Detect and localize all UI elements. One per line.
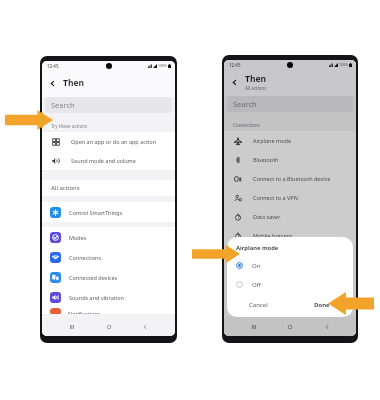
staticText: Cancel [249, 301, 268, 309]
staticText: All actions [51, 184, 80, 192]
staticText: Control SmartThings [69, 209, 123, 216]
button[interactable]: Cancel [227, 294, 290, 315]
button[interactable]: Connect to a Bluetooth device [224, 169, 356, 188]
button[interactable]: Sound mode and volume [42, 151, 175, 170]
button[interactable]: Recents [247, 320, 261, 334]
button[interactable]: Airplane mode [224, 131, 356, 150]
staticText: Connections [69, 254, 102, 261]
button[interactable]: Off [227, 275, 353, 294]
button[interactable]: Search [45, 97, 172, 113]
staticText: Sound mode and volume [71, 157, 136, 164]
staticText: Connections [233, 122, 260, 128]
button[interactable]: Connect to a VPN [224, 188, 356, 207]
button[interactable]: Modes [42, 227, 175, 247]
staticText: 100% [339, 62, 348, 67]
staticText: Data saver [253, 213, 281, 220]
staticText: Airplane mode [253, 137, 291, 144]
button[interactable]: Back [138, 320, 152, 334]
staticText: Off [252, 281, 261, 289]
button[interactable]: Open an app or do an app action [42, 132, 175, 151]
button[interactable]: Recents [65, 320, 79, 334]
button[interactable]: Mobile hotspot [224, 226, 356, 245]
button[interactable]: Connections [42, 247, 175, 267]
staticText: Connected devices [69, 274, 118, 281]
staticText: Connect to a Bluetooth device [253, 175, 331, 182]
button[interactable]: Home [102, 320, 116, 334]
staticText: Sounds and vibration [69, 294, 124, 301]
staticText: Connect to a VPN [253, 194, 298, 201]
staticText: Modes [69, 234, 87, 241]
button[interactable]: Sounds and vibration [42, 287, 175, 307]
staticText: Open an app or do an app action [71, 138, 157, 145]
button[interactable]: Connected devices [42, 267, 175, 287]
staticText: Try these actions [51, 123, 88, 129]
other: Back [224, 69, 245, 95]
button[interactable]: Back [224, 69, 356, 95]
staticText: 100% [158, 63, 167, 68]
staticText: 12:45 [229, 62, 241, 68]
button[interactable]: Data saver [224, 207, 356, 226]
staticText: Bluetooth [253, 156, 279, 163]
button[interactable]: Home [283, 320, 297, 334]
staticText: On [252, 262, 261, 270]
button[interactable]: Control SmartThings [42, 202, 175, 222]
other: Back [42, 70, 63, 96]
staticText: Then [245, 73, 267, 85]
staticText: Search [51, 100, 75, 110]
staticText: Done [314, 301, 330, 309]
button[interactable]: On [227, 256, 353, 275]
button[interactable]: Done [290, 294, 353, 315]
staticText: 12:45 [47, 63, 59, 69]
staticText: Airplane mode [236, 244, 279, 252]
button[interactable]: Bluetooth [224, 150, 356, 169]
button[interactable]: Back [42, 70, 175, 96]
staticText: Mobile hotspot [253, 232, 293, 239]
staticText: Then [63, 77, 85, 89]
button[interactable]: Search [227, 96, 353, 112]
button[interactable]: Back [320, 320, 334, 334]
staticText: Search [233, 99, 257, 109]
staticText: Notifications [68, 310, 101, 314]
staticText: All actions [245, 85, 267, 91]
